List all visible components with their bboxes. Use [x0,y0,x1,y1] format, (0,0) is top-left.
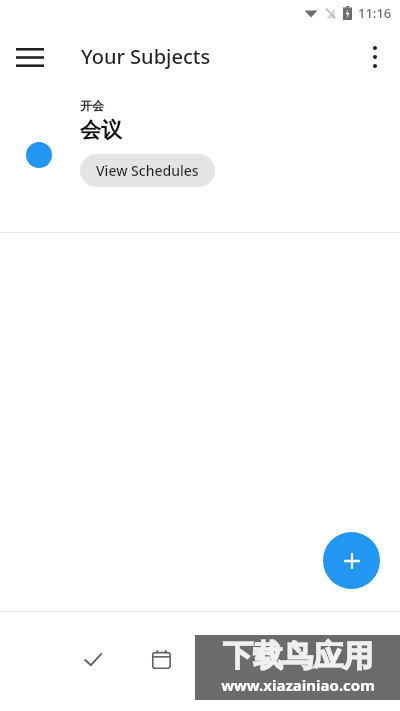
staticText: 开会 [80,98,104,113]
staticText: 下载鸟应用 [223,637,373,675]
staticText: 会议 [80,117,122,143]
button[interactable]: Tasks [61,636,125,682]
staticText: Your Subjects [81,43,211,70]
button[interactable]: Open navigation drawer [6,33,54,81]
staticText: 11:16 [358,4,392,22]
button[interactable]: Add subject [323,532,380,589]
button[interactable]: View Schedules [80,154,215,187]
staticText: View Schedules [96,161,199,180]
button[interactable]: More options [351,33,399,81]
button[interactable]: Schedule [129,636,193,682]
button[interactable]: 开会 [0,88,400,232]
staticText: www.xiazainiao.com [221,675,375,695]
